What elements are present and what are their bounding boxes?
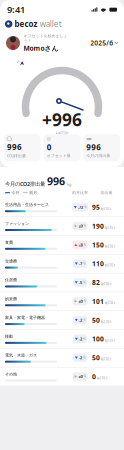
staticText: CO2排出量 [7,153,26,158]
staticText: % [83,337,85,341]
staticText: kgCO2e [105,339,116,342]
staticText: % [84,243,86,247]
staticText: 190 [92,222,104,230]
staticText: becoz [15,19,38,29]
staticText: 交通費 [5,259,17,264]
staticText: % [83,356,85,359]
staticText: kgCO2e [55,130,68,135]
button[interactable]: ファッション [0,217,124,236]
staticText: 前月比率 [72,190,88,195]
staticText: 50 [92,316,100,325]
staticText: kgCO2e [105,263,116,267]
staticText: オフセットを始めましょう！ [23,33,67,43]
staticText: 食費 [5,240,13,245]
staticText: 娯楽費 [5,296,17,301]
button[interactable]: その他 [0,367,124,386]
staticText: 110 [92,259,104,268]
staticText: 電気・水道・ガス [5,353,37,358]
staticText: 50 [92,353,100,362]
staticText: kgCO2e [97,376,108,380]
staticText: % [83,262,85,265]
staticText: 家具・家電・電子機器 [5,315,45,320]
staticText: kgCO2e [101,320,112,323]
staticText: -5 [79,280,82,285]
staticText: 今月のCO2排出量 [5,180,45,187]
staticText: -2 [79,336,82,342]
staticText: 9:41 [7,3,25,16]
staticText: ±0 [78,299,82,304]
staticText: kgCO2e [105,245,116,248]
staticText: 0 [92,372,96,381]
staticText: ±0 [78,223,82,229]
staticText: ファッション [5,221,29,226]
staticText: % [84,299,86,303]
staticText: 0 [47,142,52,152]
staticText: % [84,375,86,378]
staticText: 排出量 [100,190,112,195]
staticText: 生活用品・生活サービス [5,202,49,207]
staticText: -2 [79,355,82,360]
staticText: オフセット量 [47,153,71,158]
button[interactable]: 家具・家電・電子機器 [0,311,124,330]
staticText: kg [67,182,71,187]
staticText: その他 [5,372,17,376]
staticText: kgCO2e [101,282,112,286]
staticText: % [83,281,85,284]
staticText: +8 [78,242,82,247]
staticText: kgCO2e [101,207,112,210]
staticText: +996 [42,108,82,131]
staticText: 996 [7,142,22,152]
staticText: 996 [47,174,65,188]
staticText: -2 [79,317,82,323]
button[interactable]: 食費 [0,236,124,254]
staticText: 移動 [5,334,13,339]
staticText: % [84,224,86,228]
staticText: -72 [78,205,83,210]
staticText: 前月 [29,190,37,195]
staticText: 996 [86,142,101,152]
staticText: 住居費 [5,277,17,282]
staticText: 今月の排出量 [86,153,110,158]
button[interactable]: 生活用品・生活サービス [0,198,124,217]
staticText: Momoさん [23,44,58,53]
button[interactable]: 2025/6 [87,36,121,50]
staticText: ±0 [78,374,82,379]
button[interactable]: 娯楽費 [0,292,124,311]
button[interactable]: 移動 [0,330,124,349]
staticText: 95 [92,203,100,212]
staticText: kgCO2e [105,301,116,305]
staticText: % [84,205,86,209]
staticText: wallet [40,19,62,29]
staticText: 150 [92,240,104,249]
staticText: -7 [79,261,82,266]
staticText: 今月 [11,190,19,195]
staticText: 101 [92,297,104,306]
button[interactable]: 住居費 [0,273,124,292]
staticText: kgCO2e [105,226,116,229]
staticText: kgCO2e [101,357,112,361]
button[interactable]: 交通費 [0,254,124,273]
button[interactable]: 電気・水道・ガス [0,349,124,367]
staticText: 2025/6 [90,39,113,47]
staticText: % [83,318,85,322]
staticText: 100 [92,334,104,343]
staticText: 82 [92,278,100,287]
